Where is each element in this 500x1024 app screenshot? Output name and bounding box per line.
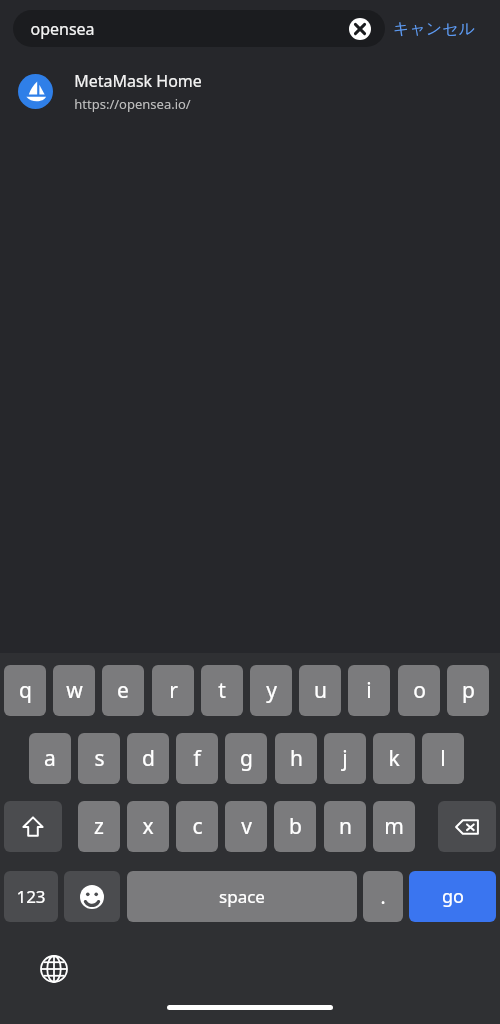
button[interactable]: q [4,665,46,716]
button[interactable]: v [225,801,267,852]
button[interactable]: opensea [13,10,385,47]
staticText: b [289,812,302,841]
staticText: s [94,744,105,773]
button[interactable]: キャンセル [393,10,493,47]
staticText: y [266,676,277,705]
staticText: c [192,812,203,841]
button[interactable]: b [274,801,316,852]
staticText: x [142,812,154,841]
button[interactable]: n [324,801,366,852]
button[interactable]: l [422,733,464,784]
staticText: 123 [16,885,46,908]
staticText: j [342,744,348,773]
staticText: space [219,885,265,908]
button[interactable]: o [398,665,440,716]
button[interactable]: MetaMask Home [0,68,500,114]
button[interactable]: i [348,665,390,716]
button[interactable]: h [275,733,317,784]
button[interactable]: d [127,733,169,784]
button[interactable]: . [363,871,403,922]
button[interactable]: a [29,733,71,784]
button[interactable]: space [127,871,357,922]
button[interactable]: g [225,733,267,784]
button[interactable]: Clear search [348,17,372,41]
staticText: e [117,676,129,705]
button[interactable]: z [78,801,120,852]
button[interactable]: k [373,733,415,784]
staticText: l [440,744,446,773]
button[interactable]: e [102,665,144,716]
staticText: r [169,676,178,705]
button[interactable]: r [152,665,194,716]
button[interactable]: Backspace [438,801,496,852]
button[interactable]: y [250,665,292,716]
button[interactable]: f [176,733,218,784]
button[interactable]: s [78,733,120,784]
staticText: p [462,676,475,705]
staticText: f [193,744,201,773]
button[interactable]: Emoji [64,871,120,922]
button[interactable]: p [447,665,489,716]
staticText: q [19,676,32,705]
button[interactable]: t [201,665,243,716]
staticText: a [44,744,56,773]
staticText: z [94,812,104,841]
staticText: https://opensea.io/ [74,95,191,113]
button[interactable]: c [176,801,218,852]
staticText: i [366,676,372,705]
staticText: v [241,812,252,841]
staticText: opensea [30,18,95,40]
staticText: w [66,676,83,705]
button[interactable]: go [409,871,496,922]
button[interactable]: Shift [4,801,62,852]
staticText: m [384,812,404,841]
button[interactable]: m [373,801,415,852]
staticText: g [240,744,253,773]
button[interactable]: 123 [4,871,58,922]
button[interactable]: j [324,733,366,784]
staticText: go [442,884,464,909]
staticText: k [388,744,400,773]
button[interactable]: w [53,665,95,716]
staticText: u [314,676,327,705]
staticText: h [290,744,303,773]
staticText: MetaMask Home [74,70,202,92]
staticText: d [142,744,155,773]
staticText: o [413,676,426,705]
button[interactable]: Change keyboard language [38,953,70,985]
staticText: キャンセル [393,19,475,39]
button[interactable]: x [127,801,169,852]
staticText: n [339,812,352,841]
staticText: . [380,884,386,910]
staticText: t [218,676,226,705]
button[interactable]: u [299,665,341,716]
